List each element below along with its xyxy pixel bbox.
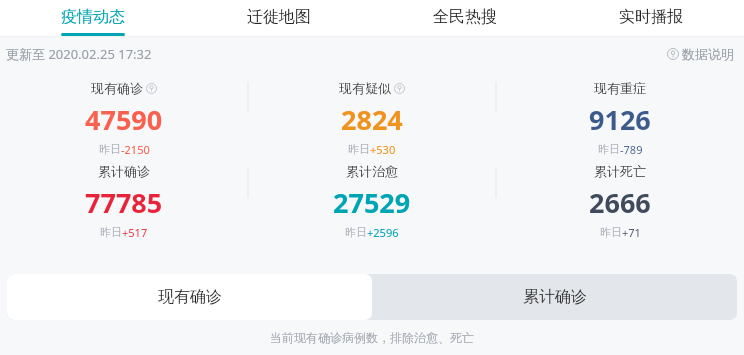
- staticText: 昨日: [99, 142, 121, 155]
- button[interactable]: 累计治愈: [248, 163, 496, 240]
- staticText: 累计治愈: [346, 163, 398, 179]
- staticText: 当前现有确诊病例数，排除治愈、死亡: [0, 330, 744, 345]
- button[interactable]: 现有疑似: [248, 80, 496, 155]
- staticText: 昨日: [345, 225, 367, 239]
- staticText: 全民热搜: [433, 7, 497, 27]
- staticText: 累计确诊: [98, 163, 150, 179]
- staticText: 实时播报: [619, 7, 683, 27]
- button[interactable]: 全民热搜: [372, 0, 558, 37]
- staticText: +2596: [367, 225, 399, 240]
- button[interactable]: 疫情动态: [0, 0, 186, 37]
- button[interactable]: 现有确诊: [0, 80, 248, 155]
- staticText: +71: [622, 225, 641, 240]
- staticText: 27529: [333, 184, 411, 221]
- staticText: +530: [370, 142, 396, 155]
- staticText: -2150: [121, 142, 150, 155]
- staticText: 更新至 2020.02.25 17:32: [6, 45, 152, 63]
- staticText: 现有确诊: [158, 287, 222, 307]
- staticText: 9126: [589, 101, 651, 138]
- staticText: 77785: [85, 184, 163, 221]
- staticText: 现有疑似: [339, 80, 391, 96]
- staticText: 累计确诊: [523, 287, 587, 307]
- staticText: 2666: [589, 184, 651, 221]
- staticText: 数据说明: [682, 46, 734, 62]
- staticText: 现有重症: [594, 80, 646, 96]
- button[interactable]: 现有重症: [496, 80, 744, 155]
- staticText: 昨日: [598, 142, 620, 155]
- staticText: 昨日: [100, 225, 122, 239]
- staticText: 昨日: [348, 142, 370, 155]
- button[interactable]: 累计死亡: [496, 163, 744, 240]
- staticText: 47590: [85, 101, 163, 138]
- staticText: +517: [122, 225, 148, 240]
- staticText: 现有确诊: [91, 80, 143, 96]
- button[interactable]: 现有确诊: [7, 274, 372, 320]
- staticText: 2824: [341, 101, 403, 138]
- staticText: -789: [620, 142, 643, 155]
- staticText: 昨日: [600, 225, 622, 239]
- button[interactable]: 迁徙地图: [186, 0, 372, 37]
- staticText: 累计死亡: [594, 163, 646, 179]
- button[interactable]: 数据说明: [665, 44, 736, 64]
- button[interactable]: 累计确诊: [372, 274, 737, 320]
- button[interactable]: 累计确诊: [0, 163, 248, 240]
- staticText: 迁徙地图: [247, 7, 311, 27]
- staticText: 疫情动态: [61, 7, 125, 27]
- button[interactable]: 实时播报: [558, 0, 744, 37]
